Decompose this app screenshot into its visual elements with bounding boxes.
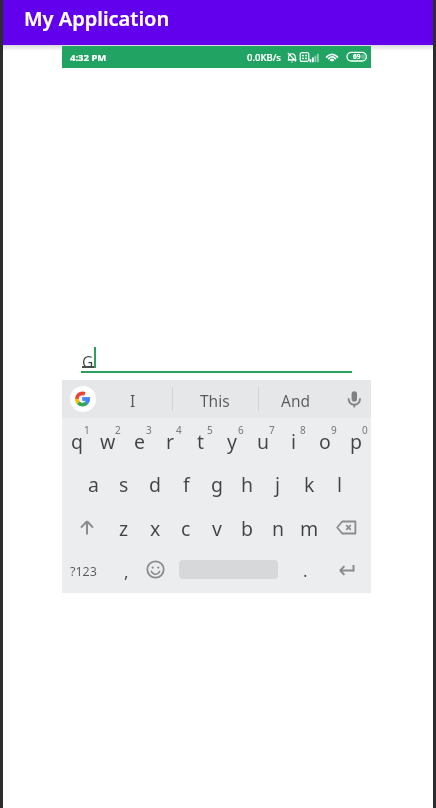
button[interactable]: s [109, 463, 139, 505]
button[interactable]: j [263, 463, 293, 505]
button[interactable]: i [279, 420, 309, 462]
button[interactable]: p [341, 420, 371, 462]
staticText: , [124, 560, 129, 583]
staticText: f [183, 471, 190, 498]
button[interactable] [147, 557, 165, 585]
button[interactable]: 1 [80, 423, 94, 437]
staticText: 4:32 PM [70, 51, 107, 64]
button[interactable]: x [140, 507, 170, 549]
button[interactable]: z [109, 507, 139, 549]
staticText: 0.0KB/s [247, 51, 281, 64]
button[interactable]: 2 [111, 423, 125, 437]
staticText: c [181, 515, 191, 542]
staticText: o [319, 428, 331, 455]
staticText: 5 [207, 423, 213, 437]
button[interactable]: 7 [265, 423, 279, 437]
button[interactable]: 3 [142, 423, 156, 437]
button[interactable]: I [103, 383, 163, 417]
button[interactable] [70, 386, 96, 412]
button[interactable]: a [78, 463, 108, 505]
staticText: v [212, 515, 222, 542]
staticText: a [88, 471, 99, 498]
button[interactable]: k [294, 463, 324, 505]
button[interactable]: f [171, 463, 201, 505]
button[interactable]: c [171, 507, 201, 549]
button[interactable]: h [232, 463, 262, 505]
button[interactable]: v [202, 507, 232, 549]
button[interactable]: q [62, 420, 92, 462]
button[interactable]: This [175, 383, 255, 417]
staticText: j [275, 471, 281, 498]
staticText: r [166, 428, 175, 455]
button[interactable]: d [140, 463, 170, 505]
staticText: My Application [24, 5, 170, 32]
button[interactable]: 6 [234, 423, 248, 437]
button[interactable]: , [116, 556, 136, 586]
staticText: ?123 [70, 563, 97, 580]
staticText: m [300, 515, 319, 542]
staticText: p [350, 428, 362, 455]
staticText: q [71, 428, 83, 455]
button[interactable] [81, 335, 352, 372]
staticText: 3 [146, 423, 152, 437]
staticText: 0 [362, 423, 368, 437]
button[interactable]: 9 [327, 423, 341, 437]
button[interactable]: t [186, 420, 216, 462]
button[interactable]: 4 [172, 423, 186, 437]
staticText: l [337, 471, 343, 498]
button[interactable]: 8 [296, 423, 310, 437]
staticText: 9 [331, 423, 337, 437]
staticText: n [272, 515, 285, 542]
staticText: 6 [238, 423, 244, 437]
staticText: And [281, 390, 311, 411]
button[interactable] [340, 384, 368, 414]
button[interactable]: u [248, 420, 278, 462]
staticText: 1 [84, 423, 90, 437]
button[interactable]: ?123 [63, 556, 103, 586]
staticText: z [119, 515, 129, 542]
button[interactable] [336, 557, 364, 585]
staticText: 7 [269, 423, 275, 437]
button[interactable]: o [310, 420, 340, 462]
button[interactable]: e [124, 420, 154, 462]
button[interactable]: n [263, 507, 293, 549]
staticText: G [82, 351, 94, 372]
staticText: k [304, 471, 315, 498]
button[interactable]: l [325, 463, 355, 505]
staticText: 4 [176, 423, 182, 437]
staticText: 2 [115, 423, 121, 437]
button[interactable] [331, 513, 361, 542]
staticText: s [119, 471, 129, 498]
staticText: y [227, 428, 237, 455]
button[interactable]: 0 [358, 423, 372, 437]
button[interactable]: . [295, 555, 315, 585]
staticText: u [257, 428, 270, 455]
staticText: 8 [300, 423, 306, 437]
staticText: h [241, 471, 254, 498]
button[interactable]: And [261, 383, 331, 417]
button[interactable]: 5 [203, 423, 217, 437]
button[interactable]: m [294, 507, 324, 549]
staticText: g [211, 471, 223, 498]
button[interactable]: g [202, 463, 232, 505]
staticText: w [100, 428, 116, 455]
staticText: x [150, 515, 161, 542]
button[interactable]: y [217, 420, 247, 462]
staticText: t [197, 428, 205, 455]
staticText: 69 [353, 52, 361, 61]
button[interactable]: r [155, 420, 185, 462]
staticText: I [130, 390, 136, 411]
staticText: i [291, 428, 297, 455]
staticText: . [303, 559, 308, 582]
staticText: d [149, 471, 161, 498]
button[interactable]: w [93, 420, 123, 462]
button[interactable]: b [232, 507, 262, 549]
button[interactable] [72, 513, 102, 542]
staticText: b [241, 515, 253, 542]
staticText: e [134, 428, 145, 455]
staticText: This [200, 390, 230, 411]
